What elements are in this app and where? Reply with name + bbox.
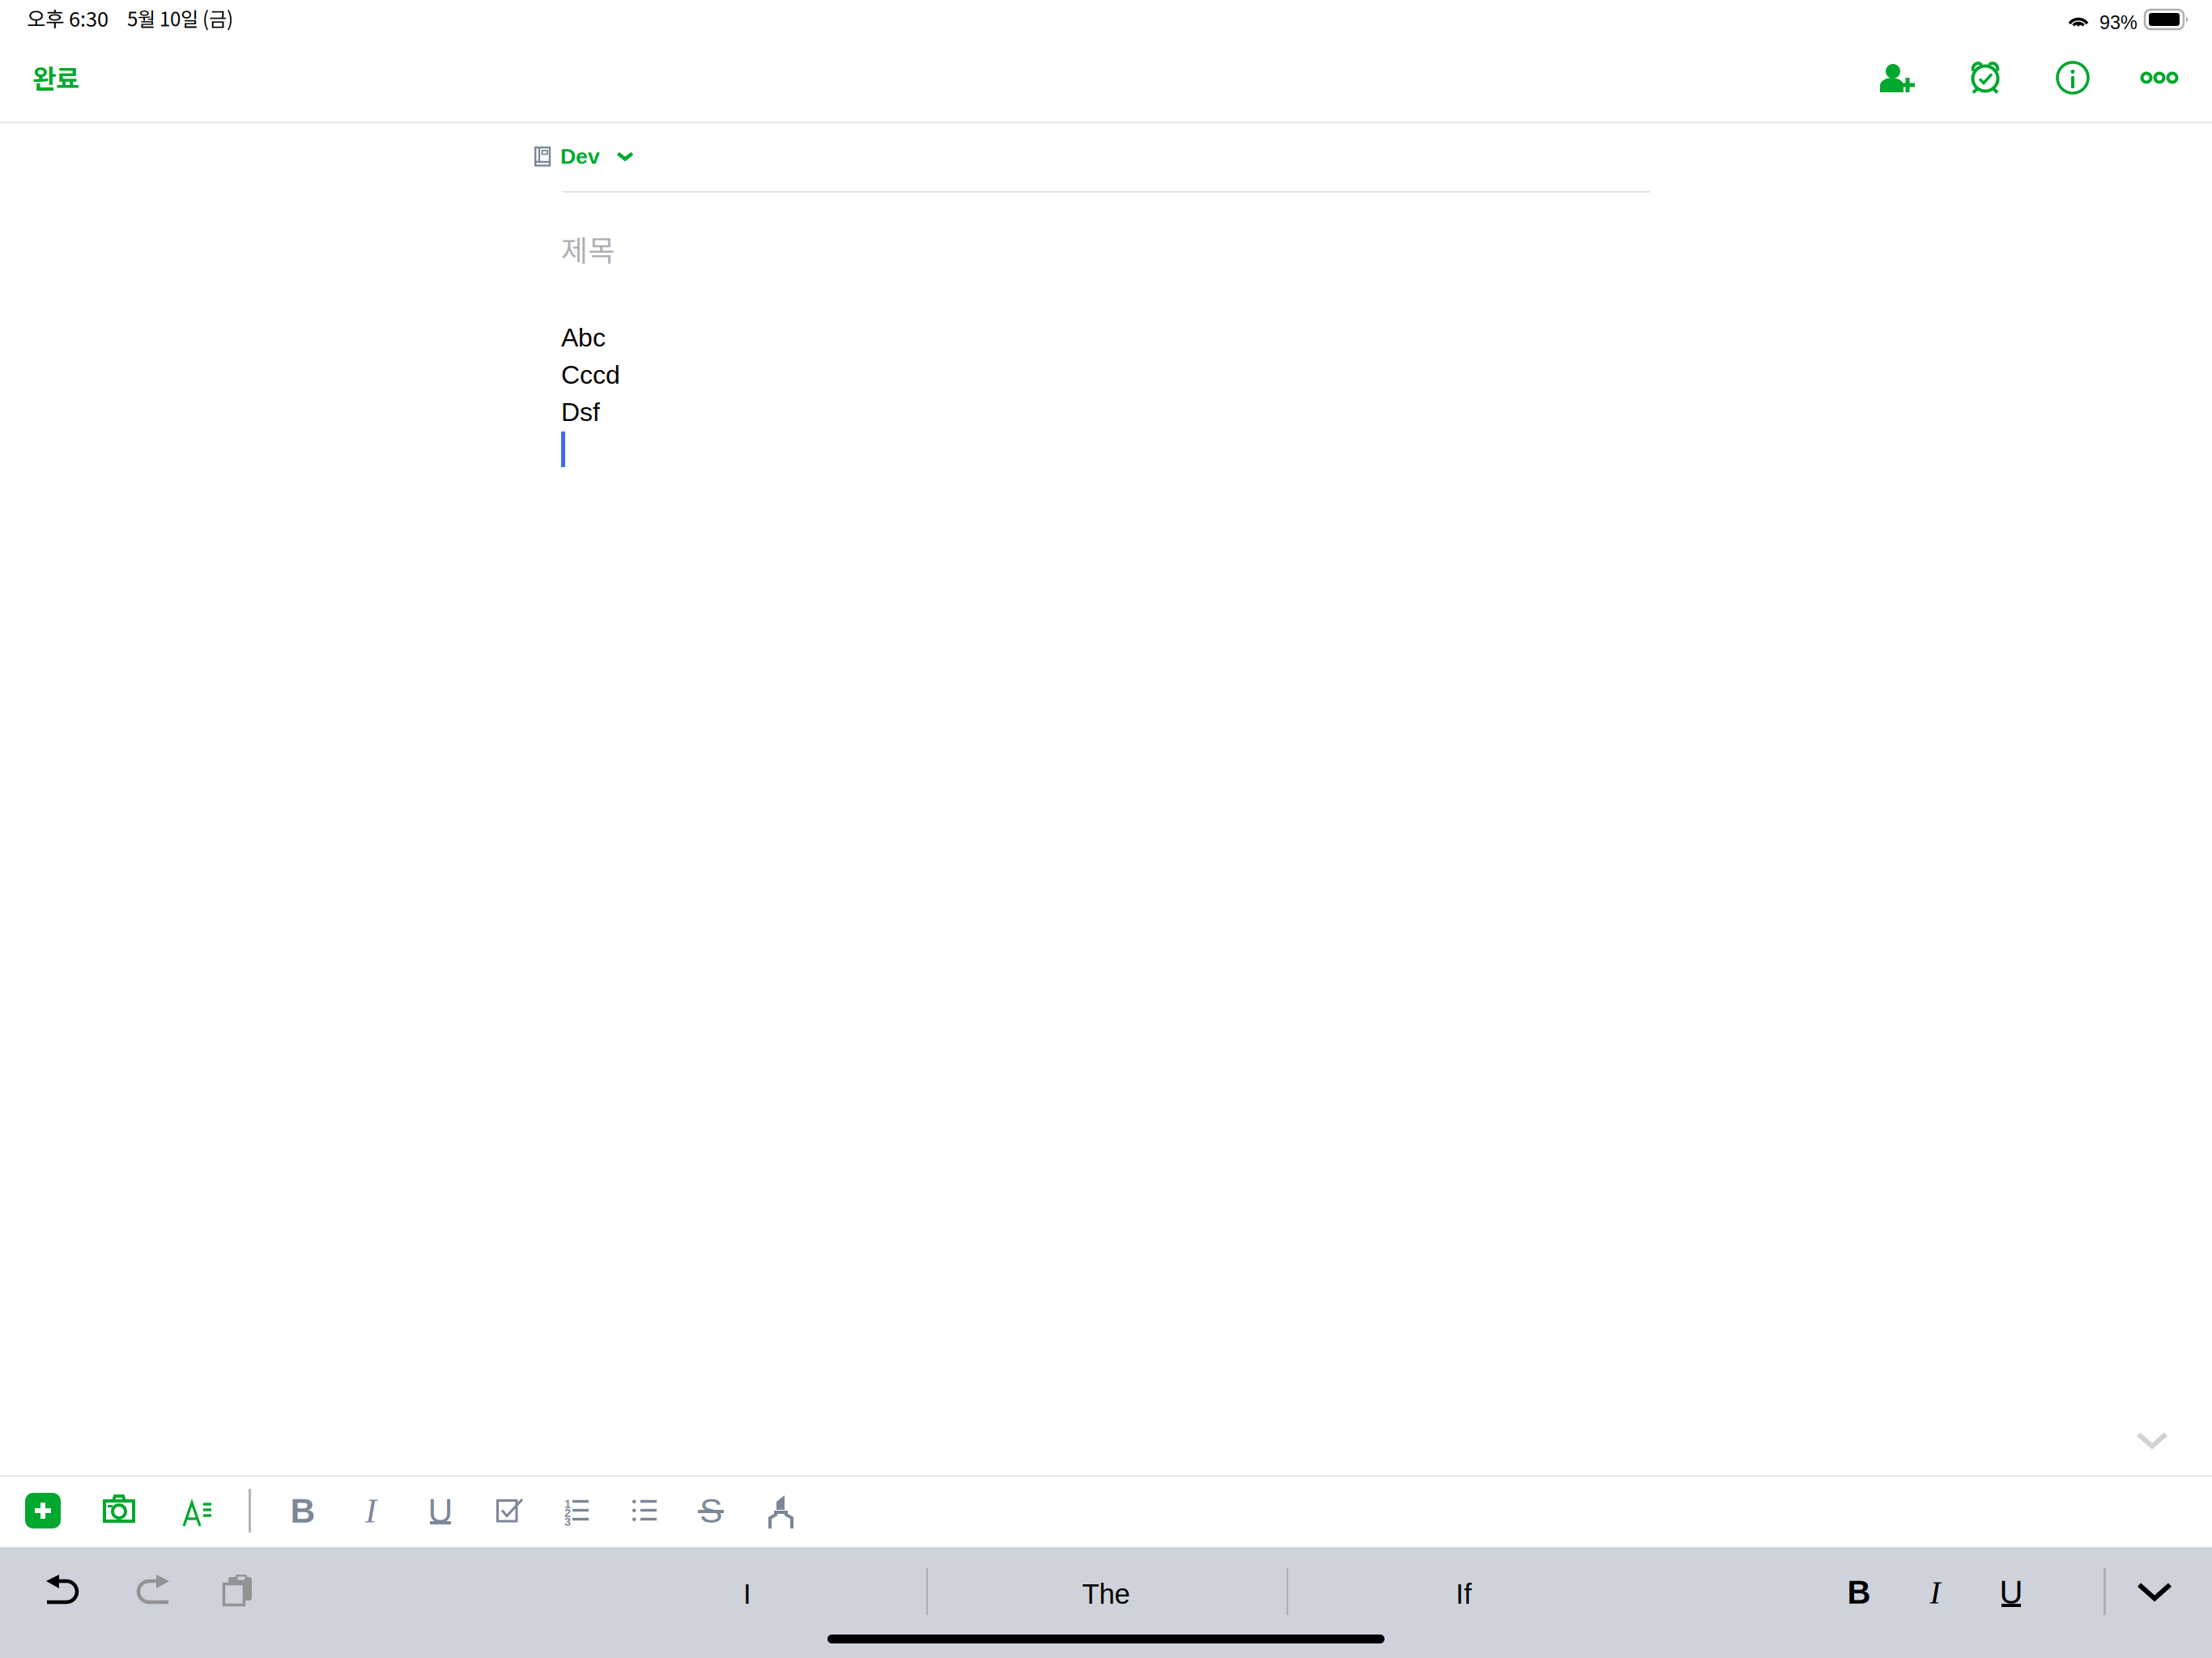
- button[interactable]: Bold: [1827, 1556, 1891, 1629]
- button[interactable]: Reminder: [1946, 39, 2024, 117]
- button[interactable]: Redo: [115, 1554, 188, 1627]
- button[interactable]: Italic: [1903, 1556, 1967, 1629]
- staticText: B: [290, 1491, 315, 1530]
- button[interactable]: Bold: [272, 1480, 334, 1541]
- staticText: The: [1082, 1578, 1130, 1610]
- staticText: 3: [564, 1515, 571, 1528]
- staticText: 1: [564, 1497, 571, 1511]
- staticText: I: [365, 1492, 376, 1530]
- button[interactable]: The: [1017, 1550, 1195, 1639]
- staticText: 5월 10일 (금): [127, 4, 233, 32]
- button[interactable]: Dev: [560, 131, 634, 181]
- button[interactable]: Numbered list: [546, 1480, 607, 1541]
- staticText: 완료: [32, 58, 79, 96]
- button[interactable]: Collapse toolbar: [2113, 1401, 2191, 1479]
- staticText: Dsf: [561, 398, 600, 427]
- button[interactable]: Italic: [340, 1480, 402, 1541]
- button[interactable]: More: [2121, 39, 2198, 117]
- button[interactable]: Text style: [167, 1483, 228, 1545]
- button[interactable]: Undo: [28, 1554, 100, 1627]
- staticText: 오후 6:30: [27, 3, 108, 33]
- staticText: S: [700, 1491, 722, 1530]
- staticText: 93%: [2099, 12, 2138, 33]
- staticText: U: [1999, 1574, 2023, 1611]
- staticText: I: [1930, 1575, 1940, 1610]
- staticText: Cccd: [561, 360, 620, 389]
- button[interactable]: 완료: [32, 41, 130, 113]
- button[interactable]: Title: [561, 220, 1648, 277]
- button[interactable]: Note info: [2034, 39, 2112, 117]
- button[interactable]: Highlight: [750, 1480, 811, 1541]
- button[interactable]: Paste: [202, 1554, 275, 1627]
- button[interactable]: I: [658, 1550, 836, 1639]
- button[interactable]: Checklist: [479, 1480, 541, 1541]
- staticText: 2: [564, 1506, 571, 1519]
- staticText: I: [743, 1578, 751, 1610]
- staticText: If: [1456, 1578, 1472, 1610]
- button[interactable]: Underline: [1979, 1556, 2044, 1629]
- button[interactable]: Strikethrough: [680, 1480, 742, 1541]
- button[interactable]: Hide keyboard: [2118, 1555, 2191, 1628]
- button[interactable]: Add people: [1859, 39, 1937, 117]
- button[interactable]: Bulleted list: [614, 1480, 675, 1541]
- staticText: U: [428, 1491, 453, 1530]
- button[interactable]: Note body: [561, 308, 1648, 461]
- button[interactable]: If: [1375, 1550, 1553, 1639]
- button[interactable]: Underline: [410, 1480, 471, 1541]
- staticText: Abc: [561, 323, 606, 352]
- staticText: 제목: [561, 227, 615, 270]
- staticText: B: [1847, 1574, 1871, 1611]
- staticText: Dev: [560, 144, 600, 168]
- button[interactable]: Camera: [88, 1477, 150, 1539]
- button[interactable]: Add attachment: [25, 1493, 61, 1528]
